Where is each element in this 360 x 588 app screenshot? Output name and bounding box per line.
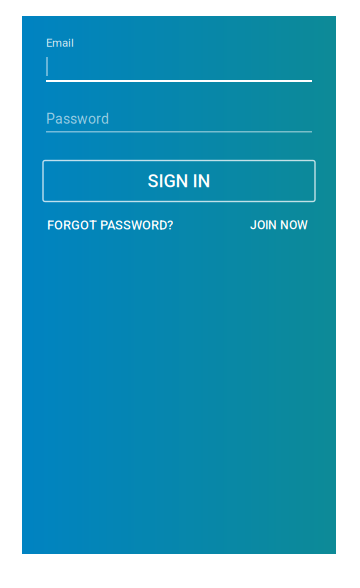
- staticText: Email: [46, 36, 74, 50]
- button[interactable]: SIGN IN: [43, 160, 315, 201]
- staticText: JOIN NOW: [250, 218, 308, 232]
- button[interactable]: FORGOT PASSWORD?: [47, 217, 173, 232]
- staticText: Password: [46, 111, 109, 127]
- staticText: SIGN IN: [147, 170, 210, 192]
- button[interactable]: JOIN NOW: [250, 218, 308, 232]
- button[interactable]: Email: [46, 38, 312, 82]
- staticText: FORGOT PASSWORD?: [47, 217, 173, 232]
- button[interactable]: Password: [46, 112, 312, 132]
